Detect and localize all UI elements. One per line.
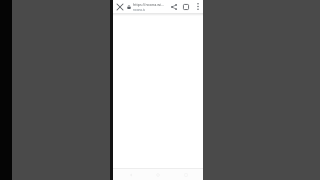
button[interactable]: https://noona.wi…: [126, 0, 168, 13]
button[interactable]: Tabs: [180, 0, 192, 13]
button[interactable]: Close: [113, 0, 126, 13]
button[interactable]: Share: [168, 0, 180, 13]
staticText: noona.is: [133, 8, 146, 12]
staticText: https://noona.wi…: [133, 2, 164, 7]
button[interactable]: More options: [192, 0, 203, 13]
